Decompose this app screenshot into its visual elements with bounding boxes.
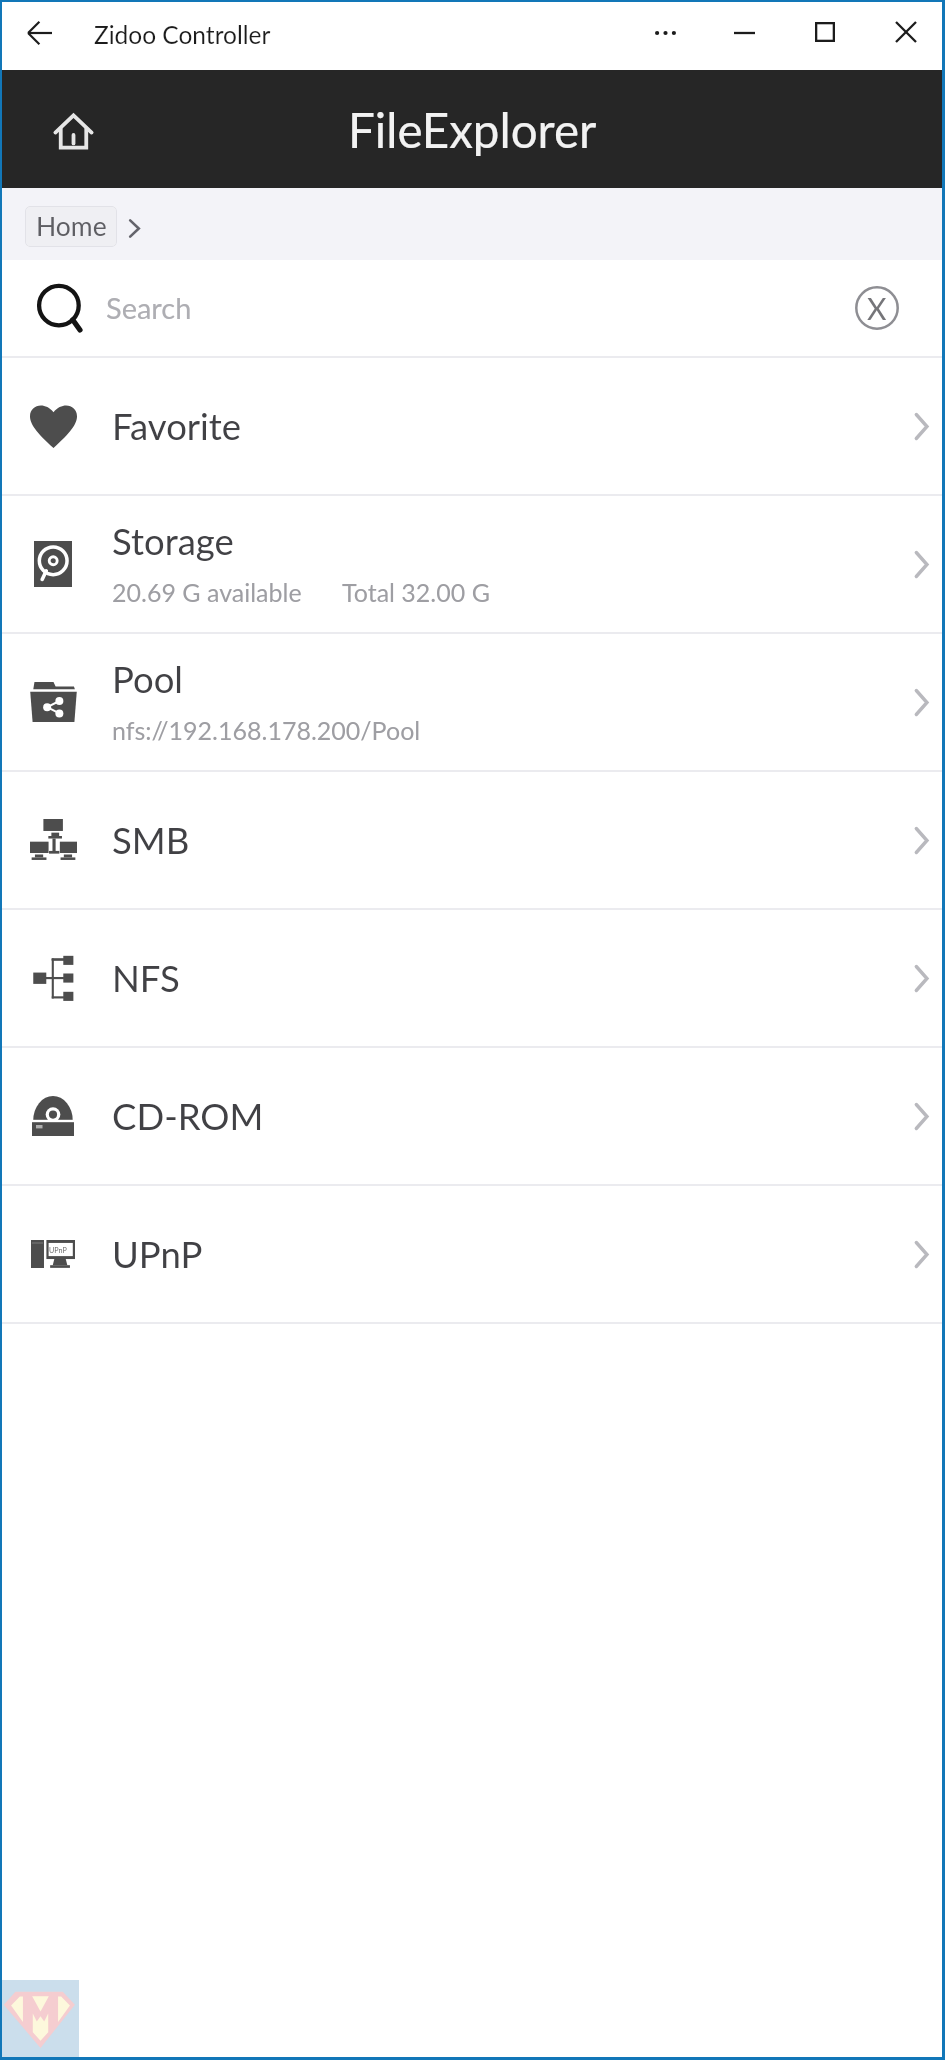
button[interactable]: Pool <box>2 634 942 770</box>
button[interactable]: Clear search <box>845 276 909 340</box>
button[interactable]: Favorite <box>2 358 942 494</box>
staticText: NFS <box>112 954 180 1000</box>
staticText: X <box>867 289 887 326</box>
staticText: CD-ROM <box>112 1092 264 1138</box>
button[interactable]: Search <box>2 260 942 356</box>
button[interactable]: More options <box>626 2 705 70</box>
staticText: nfs://192.168.178.200/Pool <box>112 714 421 745</box>
staticText: UPnP <box>112 1230 203 1276</box>
staticText: Pool <box>112 655 183 701</box>
staticText: UPnP <box>49 1246 67 1255</box>
staticText: Search <box>106 289 192 325</box>
button[interactable]: SMB <box>2 772 942 908</box>
button[interactable]: UPnP <box>2 1186 942 1322</box>
button[interactable]: Maximize <box>785 2 864 70</box>
staticText: FileExplorer <box>348 99 597 158</box>
button[interactable]: Home <box>25 206 117 247</box>
button[interactable]: Close <box>866 2 945 70</box>
button[interactable]: Storage <box>2 496 942 632</box>
button[interactable]: NFS <box>2 910 942 1046</box>
staticText: SMB <box>112 816 190 862</box>
staticText: Home <box>36 209 107 242</box>
staticText: Storage <box>112 517 234 563</box>
button[interactable]: Back <box>8 4 70 66</box>
staticText: 20.69 G available <box>112 576 302 607</box>
button[interactable]: Minimize <box>705 2 784 70</box>
staticText: Favorite <box>112 402 242 448</box>
button[interactable]: Home <box>30 88 116 174</box>
staticText: Zidoo Controller <box>94 19 271 50</box>
button[interactable]: CD-ROM <box>2 1048 942 1184</box>
staticText: Total 32.00 G <box>342 576 490 607</box>
